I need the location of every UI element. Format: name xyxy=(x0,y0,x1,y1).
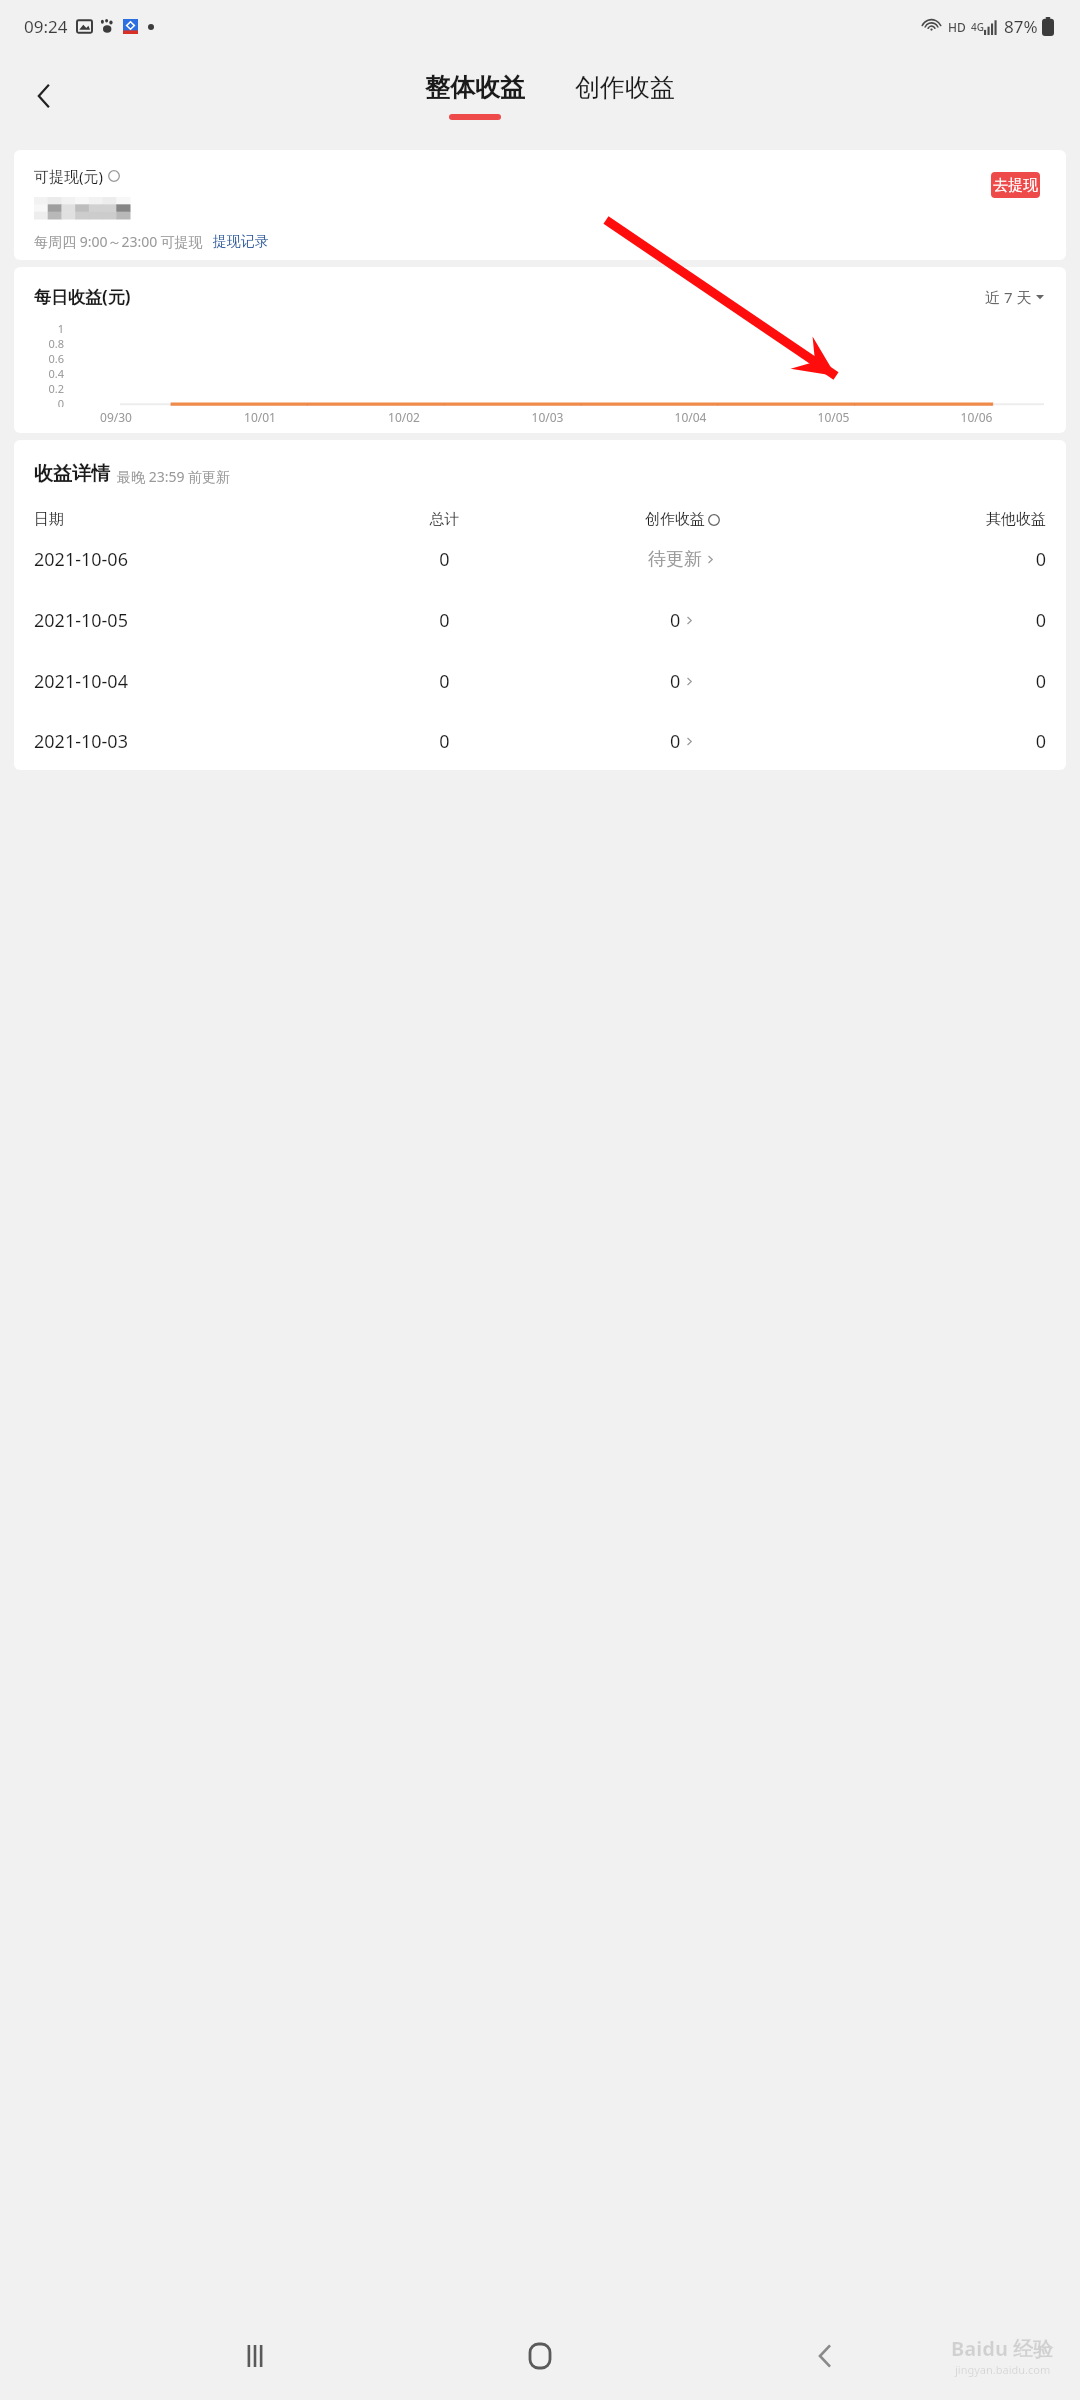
button[interactable]: Back xyxy=(795,2326,855,2386)
staticText: 0.8 xyxy=(34,336,64,351)
staticText: 2021-10-03 xyxy=(34,729,339,754)
button[interactable]: 整体收益 xyxy=(415,72,535,120)
staticText: Baidu 经验 xyxy=(951,2335,1054,2362)
staticText: 待更新 xyxy=(648,548,702,571)
staticText: 0 xyxy=(34,396,64,407)
staticText: 0 xyxy=(814,729,1046,754)
button[interactable]: 提现记录 xyxy=(213,233,269,251)
staticText: 其他收益 xyxy=(814,510,1046,529)
staticText: 去提现 xyxy=(993,176,1038,195)
staticText: 0 xyxy=(814,669,1046,694)
staticText: 创作收益 xyxy=(575,72,675,103)
button[interactable]: 近 7 天 xyxy=(985,287,1044,307)
button[interactable]: 创作收益 xyxy=(565,72,685,103)
staticText: 提现记录 xyxy=(213,233,269,251)
other: Help xyxy=(108,170,120,182)
staticText: 收益详情 xyxy=(34,462,110,486)
staticText: 2021-10-04 xyxy=(34,669,339,694)
staticText: 0 xyxy=(339,669,550,694)
button[interactable]: 去提现 xyxy=(991,172,1040,198)
staticText: 0 xyxy=(339,608,550,633)
staticText: jingyan.baidu.com xyxy=(955,2362,1051,2377)
button[interactable]: 2021-10-06 xyxy=(14,529,1066,590)
staticText: 0 xyxy=(670,669,681,694)
staticText: 最晚 23:59 前更新 xyxy=(117,467,231,486)
button[interactable]: Back xyxy=(14,66,74,126)
staticText: 可提现(元) xyxy=(34,166,104,186)
staticText: 总计 xyxy=(339,510,550,529)
button[interactable]: Home xyxy=(510,2326,570,2386)
staticText: 整体收益 xyxy=(425,72,525,103)
staticText: 2021-10-05 xyxy=(34,608,339,633)
staticText: 创作收益 xyxy=(645,510,705,529)
staticText: 0.2 xyxy=(34,381,64,396)
staticText: 0 xyxy=(670,608,681,633)
other: Help xyxy=(708,514,720,526)
staticText: 0 xyxy=(814,547,1046,572)
staticText: 0 xyxy=(670,729,681,754)
staticText: 2021-10-06 xyxy=(34,547,339,572)
staticText: HD xyxy=(948,19,966,35)
button[interactable]: 2021-10-03 xyxy=(14,712,1066,770)
staticText: 0.4 xyxy=(34,366,64,381)
staticText: 09/30 xyxy=(44,409,188,425)
staticText: 0.6 xyxy=(34,351,64,366)
staticText: 10/02 xyxy=(332,409,476,425)
staticText: 87% xyxy=(1004,15,1038,38)
button[interactable]: 2021-10-05 xyxy=(14,590,1066,651)
staticText: 0 xyxy=(339,547,550,572)
staticText: 日期 xyxy=(34,510,339,529)
staticText: 每周四 9:00～23:00 可提现 xyxy=(34,232,203,251)
staticText: 10/04 xyxy=(619,409,762,425)
staticText: 4G xyxy=(971,20,984,34)
staticText: 0 xyxy=(814,608,1046,633)
staticText: 10/06 xyxy=(905,409,1048,425)
staticText: 09:24 xyxy=(24,15,68,38)
button[interactable]: 2021-10-04 xyxy=(14,651,1066,712)
staticText: 10/03 xyxy=(476,409,619,425)
staticText: 0 xyxy=(339,729,550,754)
staticText: 近 7 天 xyxy=(985,287,1032,307)
staticText: 每日收益(元) xyxy=(34,285,131,308)
staticText: 10/01 xyxy=(188,409,332,425)
button[interactable]: Recents xyxy=(225,2326,285,2386)
staticText: 10/05 xyxy=(762,409,905,425)
staticText: 1 xyxy=(34,321,64,336)
